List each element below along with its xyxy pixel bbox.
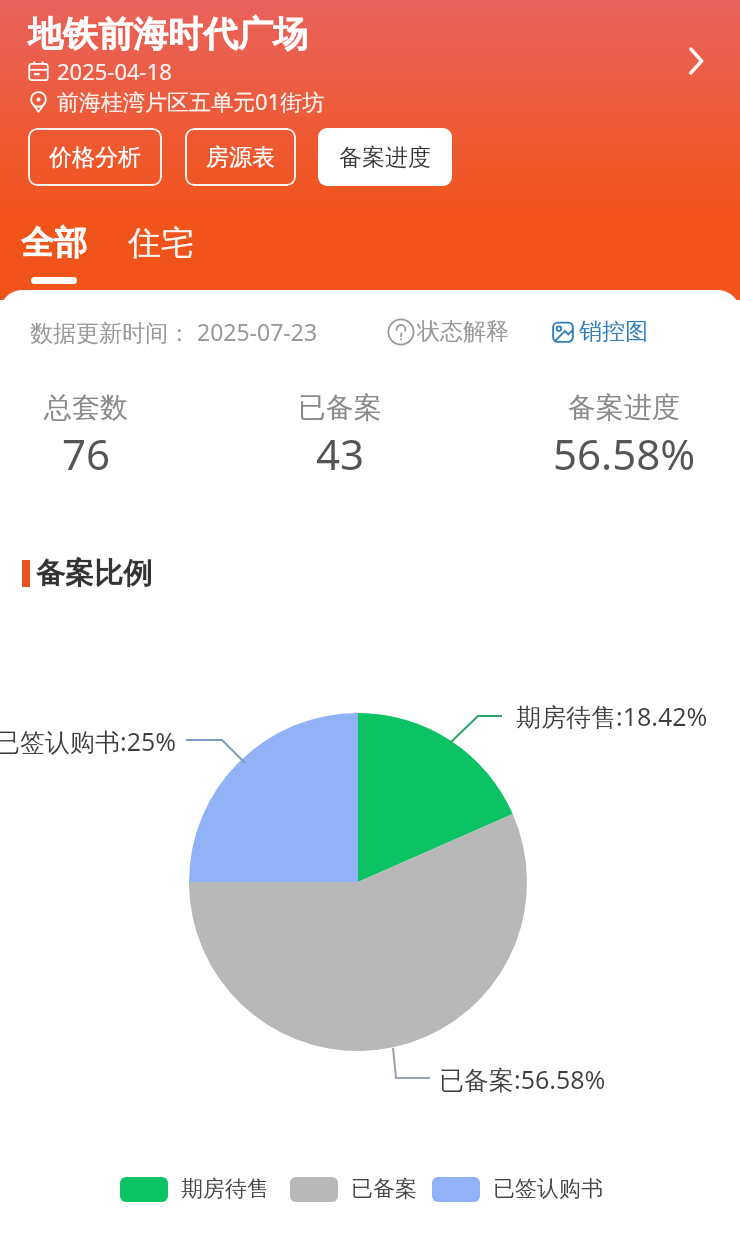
staticText: 住宅: [128, 222, 194, 264]
staticText: 56.58%: [553, 425, 696, 478]
button[interactable]: 已备案: [290, 1175, 417, 1203]
staticText: 期房待售: [181, 1175, 269, 1203]
button[interactable]: 期房待售: [120, 1175, 269, 1203]
button[interactable]: 房源表: [185, 128, 296, 186]
staticText: 已备案:56.58%: [439, 1062, 606, 1096]
staticText: 销控图: [579, 317, 648, 346]
staticText: 备案进度: [568, 390, 680, 425]
staticText: 状态解释: [417, 317, 509, 346]
button[interactable]: 备案进度: [318, 128, 452, 186]
button[interactable]: 地铁前海时代广场: [28, 12, 325, 116]
staticText: 76: [62, 425, 111, 478]
staticText: 期房待售:18.42%: [516, 699, 708, 733]
staticText: 2025-04-18: [57, 56, 172, 86]
staticText: 已签认购书:25%: [0, 724, 177, 758]
button[interactable]: 价格分析: [28, 128, 162, 186]
staticText: 地铁前海时代广场: [28, 12, 308, 56]
staticText: 43: [316, 425, 365, 478]
staticText: 全部: [21, 222, 87, 264]
staticText: 已签认购书: [493, 1175, 603, 1203]
staticText: 前海桂湾片区五单元01街坊: [57, 86, 325, 116]
button[interactable]: 已签认购书: [432, 1175, 603, 1203]
staticText: 已备案: [298, 390, 382, 425]
staticText: 总套数: [44, 390, 128, 425]
button[interactable]: 状态解释: [387, 317, 509, 346]
staticText: 数据更新时间： 2025-07-23: [30, 316, 318, 347]
staticText: 已备案: [351, 1175, 417, 1203]
staticText: 备案进度: [339, 143, 431, 172]
button[interactable]: 全部: [18, 222, 90, 284]
button[interactable]: 住宅: [125, 222, 197, 284]
staticText: 备案比例: [36, 555, 152, 592]
staticText: 价格分析: [49, 143, 141, 172]
button[interactable]: More details: [671, 37, 719, 85]
button[interactable]: 销控图: [551, 317, 648, 346]
staticText: 房源表: [206, 143, 275, 172]
